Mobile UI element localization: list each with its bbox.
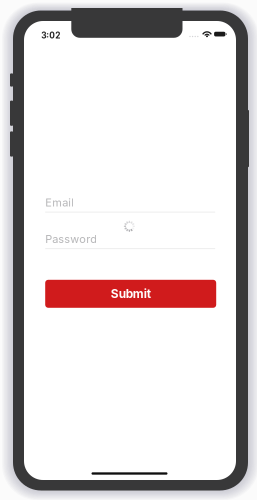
- button[interactable]: Password: [45, 234, 215, 249]
- staticText: 3:02: [41, 30, 60, 40]
- staticText: Submit: [111, 287, 151, 301]
- button[interactable]: Submit: [45, 280, 216, 308]
- button[interactable]: Email: [45, 197, 215, 213]
- staticText: Email: [45, 196, 74, 209]
- staticText: Password: [45, 232, 97, 246]
